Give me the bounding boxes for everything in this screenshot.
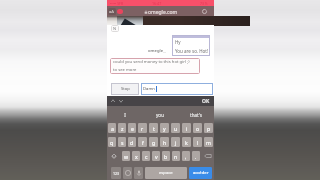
staticText: l (197, 139, 199, 146)
button[interactable]: k (182, 137, 191, 147)
staticText: espace (159, 170, 173, 176)
staticText: OK (202, 98, 210, 105)
button[interactable]: espace (145, 167, 187, 179)
staticText: I (124, 112, 126, 118)
staticText: s (121, 139, 124, 146)
staticText: y (163, 125, 166, 132)
button[interactable]: Previous field (109, 97, 117, 105)
staticText: a (111, 125, 114, 132)
button[interactable]: u (171, 123, 180, 133)
button[interactable]: v (152, 151, 160, 161)
button[interactable]: b (162, 151, 170, 161)
button[interactable]: . (192, 151, 200, 161)
staticText: Stop (121, 86, 130, 92)
staticText: o (196, 125, 200, 132)
button[interactable]: o (193, 123, 202, 133)
button[interactable]: a (108, 123, 116, 133)
staticText: that's (190, 112, 202, 118)
button[interactable]: OK (201, 97, 211, 106)
button[interactable]: Emoji keyboard (123, 167, 132, 179)
button[interactable]: 123 (111, 167, 121, 179)
button[interactable]: Stop (111, 83, 139, 95)
staticText: g (152, 139, 156, 146)
staticText: You are so. Hot! (175, 48, 209, 54)
button[interactable]: h (160, 137, 169, 147)
button[interactable]: t (149, 123, 158, 133)
staticText: 16:47 (152, 1, 162, 6)
button[interactable]: you (142, 106, 178, 123)
staticText: i (186, 125, 188, 132)
staticText: r (141, 125, 144, 132)
staticText: h (163, 139, 167, 146)
button[interactable]: e (128, 123, 136, 133)
button[interactable]: aA (108, 8, 116, 15)
staticText: x (135, 153, 138, 160)
button[interactable]: p (204, 123, 213, 133)
staticText: omegle.com (148, 9, 178, 16)
staticText: p (207, 125, 211, 132)
button[interactable]: that's (178, 106, 214, 123)
staticText: . (195, 153, 197, 160)
button[interactable]: s (118, 137, 126, 147)
staticText: n (174, 153, 178, 160)
button[interactable]: n (172, 151, 180, 161)
button[interactable]: Recording indicator (117, 9, 123, 14)
staticText: could you send money to this hot girl ;) (113, 59, 190, 65)
button[interactable]: Dictation (134, 167, 143, 179)
button[interactable]: i (182, 123, 191, 133)
button[interactable]: m (204, 137, 213, 147)
staticText: b (164, 153, 168, 160)
staticText: k (185, 139, 188, 146)
staticText: , (185, 153, 187, 160)
button[interactable]: g (149, 137, 158, 147)
button[interactable]: y (160, 123, 169, 133)
staticText: j (175, 139, 177, 146)
staticText: 73 % (200, 1, 208, 6)
button[interactable]: x (132, 151, 140, 161)
staticText: t (153, 125, 155, 132)
staticText: N (113, 26, 117, 31)
staticText: ... (163, 49, 166, 54)
staticText: m (206, 139, 211, 146)
staticText: you (156, 112, 164, 118)
button[interactable]: Next field (117, 97, 125, 105)
staticText: f (142, 139, 144, 146)
button[interactable]: Reload page (201, 8, 208, 15)
button[interactable]: d (128, 137, 136, 147)
staticText: v (155, 153, 158, 160)
button[interactable]: Shift (108, 151, 120, 161)
staticText: w (124, 153, 129, 160)
button[interactable]: f (138, 137, 147, 147)
staticText: Hy (175, 39, 181, 45)
staticText: d (130, 139, 134, 146)
button[interactable]: c (142, 151, 150, 161)
button[interactable]: Damn (141, 83, 213, 95)
button[interactable]: accéder (189, 167, 212, 179)
staticText: ••••• SFR (110, 1, 123, 6)
staticText: u (174, 125, 178, 132)
button[interactable]: q (108, 137, 116, 147)
button[interactable]: I (107, 106, 142, 123)
button[interactable]: l (193, 137, 202, 147)
button[interactable]: Backspace (202, 151, 213, 161)
staticText: e (131, 125, 134, 132)
staticText: Damn (143, 86, 155, 92)
button[interactable]: , (182, 151, 190, 161)
staticText: c (145, 153, 148, 160)
staticText: 123 (113, 171, 120, 176)
staticText: to see more (113, 67, 137, 73)
button[interactable]: j (171, 137, 180, 147)
staticText: omegle (148, 48, 164, 54)
staticText: q (110, 139, 114, 146)
button[interactable]: r (138, 123, 147, 133)
button[interactable]: w (122, 151, 130, 161)
button[interactable]: z (118, 123, 126, 133)
staticText: aA (109, 9, 115, 15)
staticText: z (121, 125, 124, 132)
staticText: accéder (193, 170, 209, 176)
